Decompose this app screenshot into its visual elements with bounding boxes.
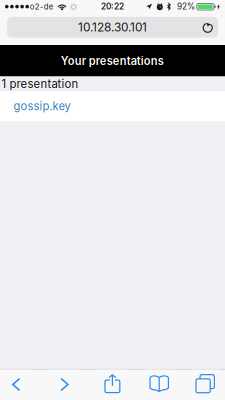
button[interactable]: Reload [200, 20, 216, 36]
staticText: 1 presentation [1, 77, 78, 91]
button[interactable]: 10.128.30.101 [7, 17, 218, 38]
staticText: o2-de [30, 2, 54, 11]
button[interactable]: Forward [49, 369, 79, 399]
staticText: Your presentations [61, 54, 164, 68]
staticText: 92% [177, 2, 195, 12]
button[interactable]: Bookmarks [144, 369, 174, 399]
staticText: gossip.key [13, 99, 70, 113]
button[interactable]: Share [97, 369, 127, 399]
button[interactable]: Tabs [190, 369, 220, 399]
button[interactable]: Back [1, 369, 31, 399]
button[interactable]: gossip.key [0, 92, 76, 120]
staticText: 10.128.30.101 [78, 20, 147, 34]
staticText: 20:22 [101, 2, 124, 12]
